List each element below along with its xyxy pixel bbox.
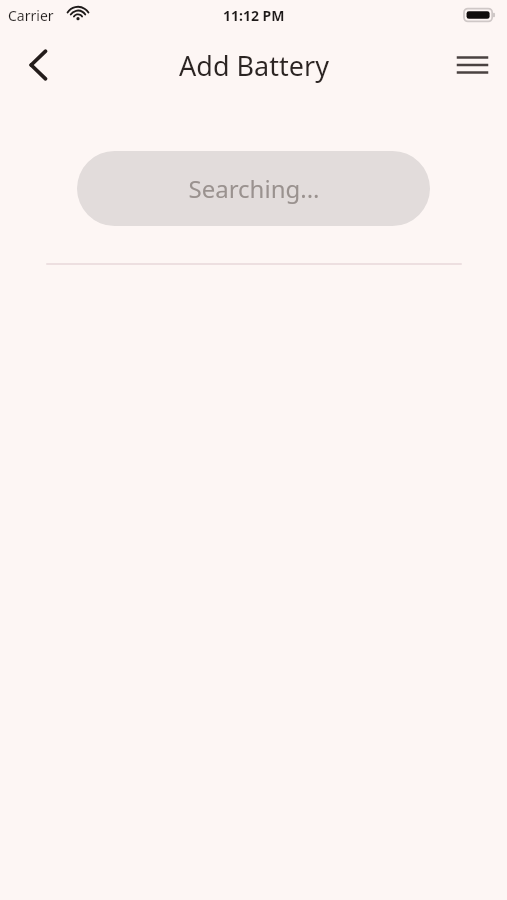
staticText: Searching... [188, 172, 320, 205]
button[interactable]: Back [14, 41, 62, 89]
button[interactable]: Searching... [77, 151, 430, 226]
button[interactable]: Menu [448, 41, 496, 89]
staticText: Add Battery [179, 47, 329, 84]
staticText: Carrier [8, 6, 54, 25]
staticText: 11:12 PM [223, 6, 285, 25]
